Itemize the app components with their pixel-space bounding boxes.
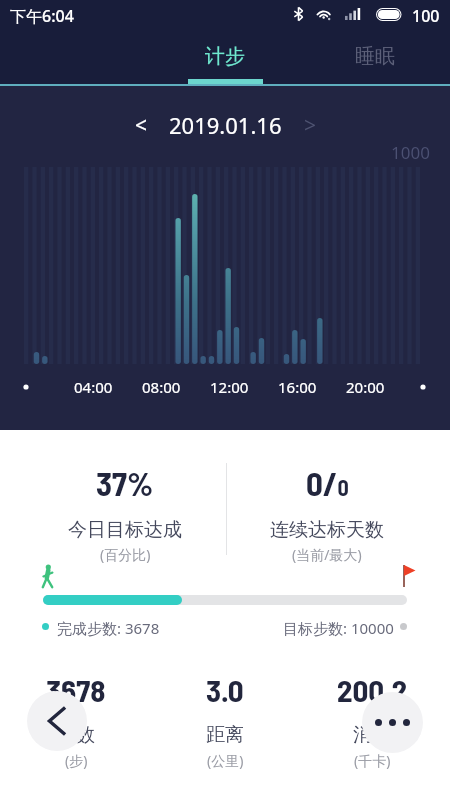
staticText: (步) [65,751,88,770]
staticText: 下午6:04 [10,5,74,27]
staticText: > [304,111,317,140]
button[interactable]: Next day [292,107,328,143]
staticText: 步数 [57,723,95,747]
staticText: 04:00 [74,377,113,397]
button[interactable]: Back [27,691,87,751]
staticText: 连续达标天数 [270,518,384,542]
staticText: 消耗 [353,723,391,747]
staticText: 距离 [206,723,244,747]
staticText: 2019.01.16 [169,110,282,140]
button[interactable]: More options [362,692,423,753]
staticText: 3678 [46,671,106,708]
staticText: 完成步数: 3678 [57,618,160,638]
staticText: 100 [412,5,440,27]
staticText: 3.0 [206,671,244,708]
staticText: 目标步数: 10000 [283,618,394,638]
staticText: 睡眠 [355,44,395,69]
staticText: 20:00 [346,377,385,397]
staticText: (公里) [207,751,244,770]
staticText: 1000 [391,141,430,164]
staticText: (百分比) [100,545,151,564]
staticText: 12:00 [210,377,249,397]
button[interactable]: Previous day [123,107,159,143]
staticText: (千卡) [354,751,391,770]
staticText: 08:00 [142,377,181,397]
staticText: 0/0 [306,463,349,503]
staticText: 计步 [205,44,245,69]
staticText: 今日目标达成 [68,518,182,542]
staticText: (当前/最大) [292,545,362,564]
staticText: 37% [96,463,154,503]
staticText: 16:00 [278,377,317,397]
staticText: < [135,111,148,140]
button[interactable]: 计步 [150,34,300,85]
button[interactable]: 睡眠 [300,34,450,85]
staticText: 200.2 [337,671,408,708]
